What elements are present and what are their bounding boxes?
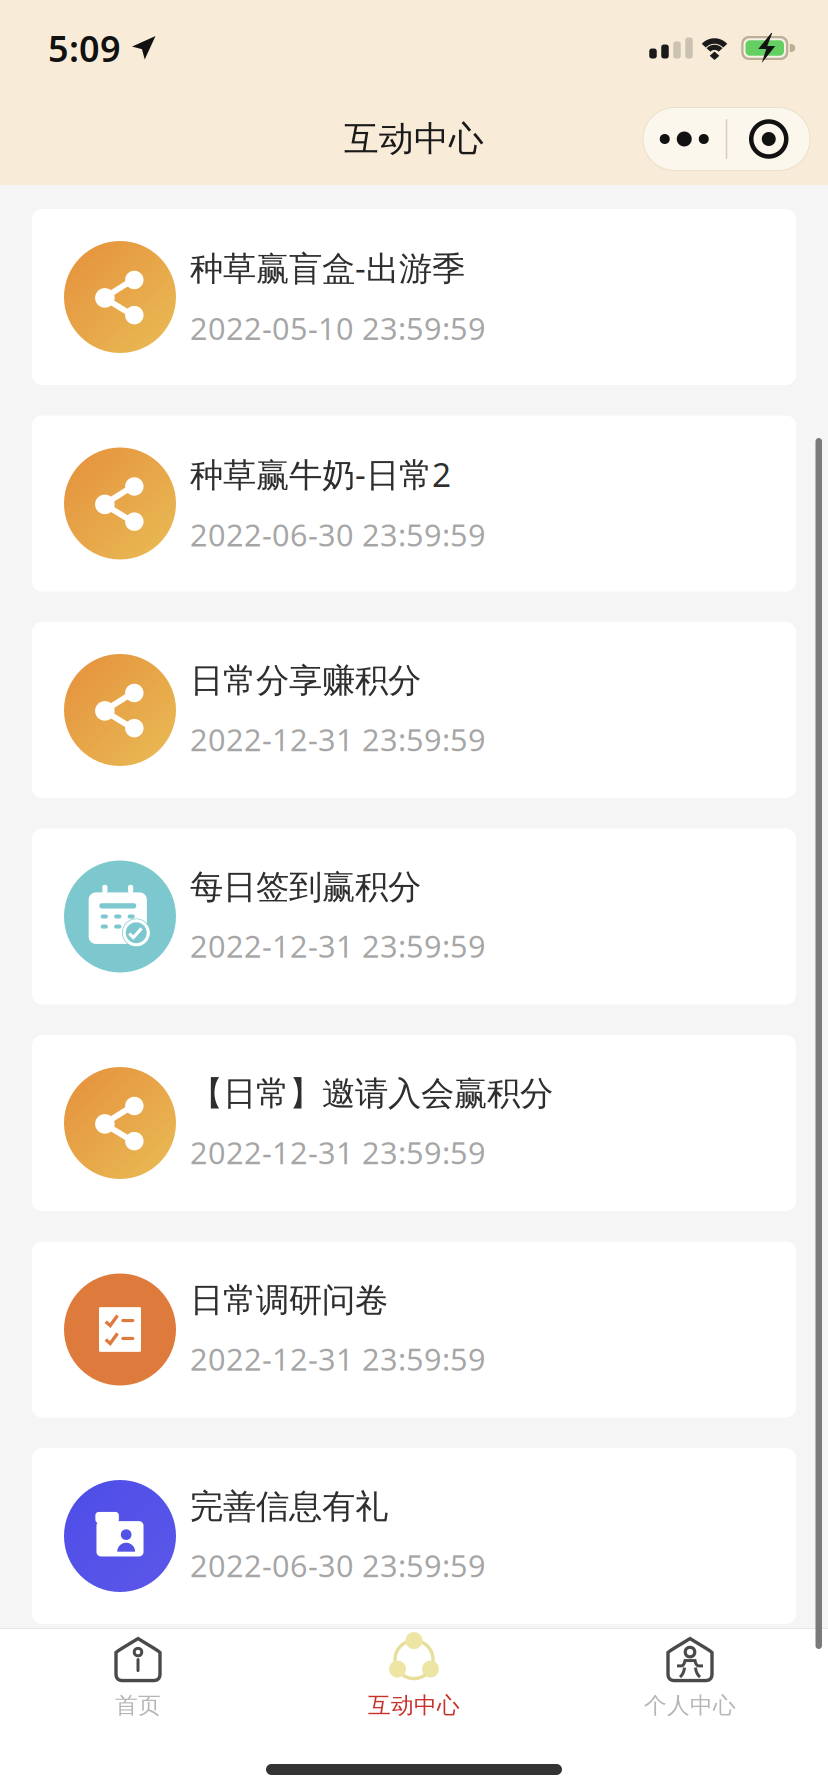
- button[interactable]: 完善信息有礼: [32, 1448, 796, 1624]
- staticText: 2022-12-31 23:59:59: [190, 926, 486, 966]
- staticText: 互动中心: [344, 118, 484, 160]
- button[interactable]: Close mini program: [727, 107, 810, 170]
- staticText: 2022-12-31 23:59:59: [190, 719, 486, 760]
- button[interactable]: More: [643, 107, 726, 170]
- button[interactable]: 每日签到赢积分: [32, 828, 796, 1004]
- staticText: 【日常】邀请入会赢积分: [190, 1073, 553, 1114]
- staticText: 2022-06-30 23:59:59: [190, 1545, 486, 1586]
- staticText: 2022-05-10 23:59:59: [190, 308, 486, 348]
- button[interactable]: 个人中心: [552, 1629, 828, 1725]
- staticText: 每日签到赢积分: [190, 867, 421, 908]
- staticText: 2022-12-31 23:59:59: [190, 1339, 486, 1379]
- button[interactable]: 【日常】邀请入会赢积分: [32, 1035, 796, 1211]
- button[interactable]: 种草赢牛奶-日常2: [32, 415, 796, 591]
- staticText: 2022-12-31 23:59:59: [190, 1132, 486, 1173]
- staticText: 首页: [115, 1692, 161, 1719]
- button[interactable]: 互动中心: [276, 1629, 552, 1725]
- button[interactable]: 种草赢盲盒-出游季: [32, 209, 796, 385]
- staticText: 日常调研问卷: [190, 1280, 388, 1321]
- staticText: 种草赢盲盒-出游季: [190, 245, 465, 290]
- staticText: 互动中心: [368, 1692, 460, 1719]
- staticText: 种草赢牛奶-日常2: [190, 452, 451, 496]
- staticText: 完善信息有礼: [190, 1486, 388, 1527]
- staticText: 个人中心: [644, 1692, 736, 1719]
- staticText: 2022-06-30 23:59:59: [190, 514, 486, 555]
- staticText: 5:09: [48, 24, 121, 72]
- button[interactable]: 首页: [0, 1629, 276, 1725]
- button[interactable]: 日常调研问卷: [32, 1241, 796, 1417]
- button[interactable]: 日常分享赚积分: [32, 622, 796, 798]
- staticText: 日常分享赚积分: [190, 660, 421, 701]
